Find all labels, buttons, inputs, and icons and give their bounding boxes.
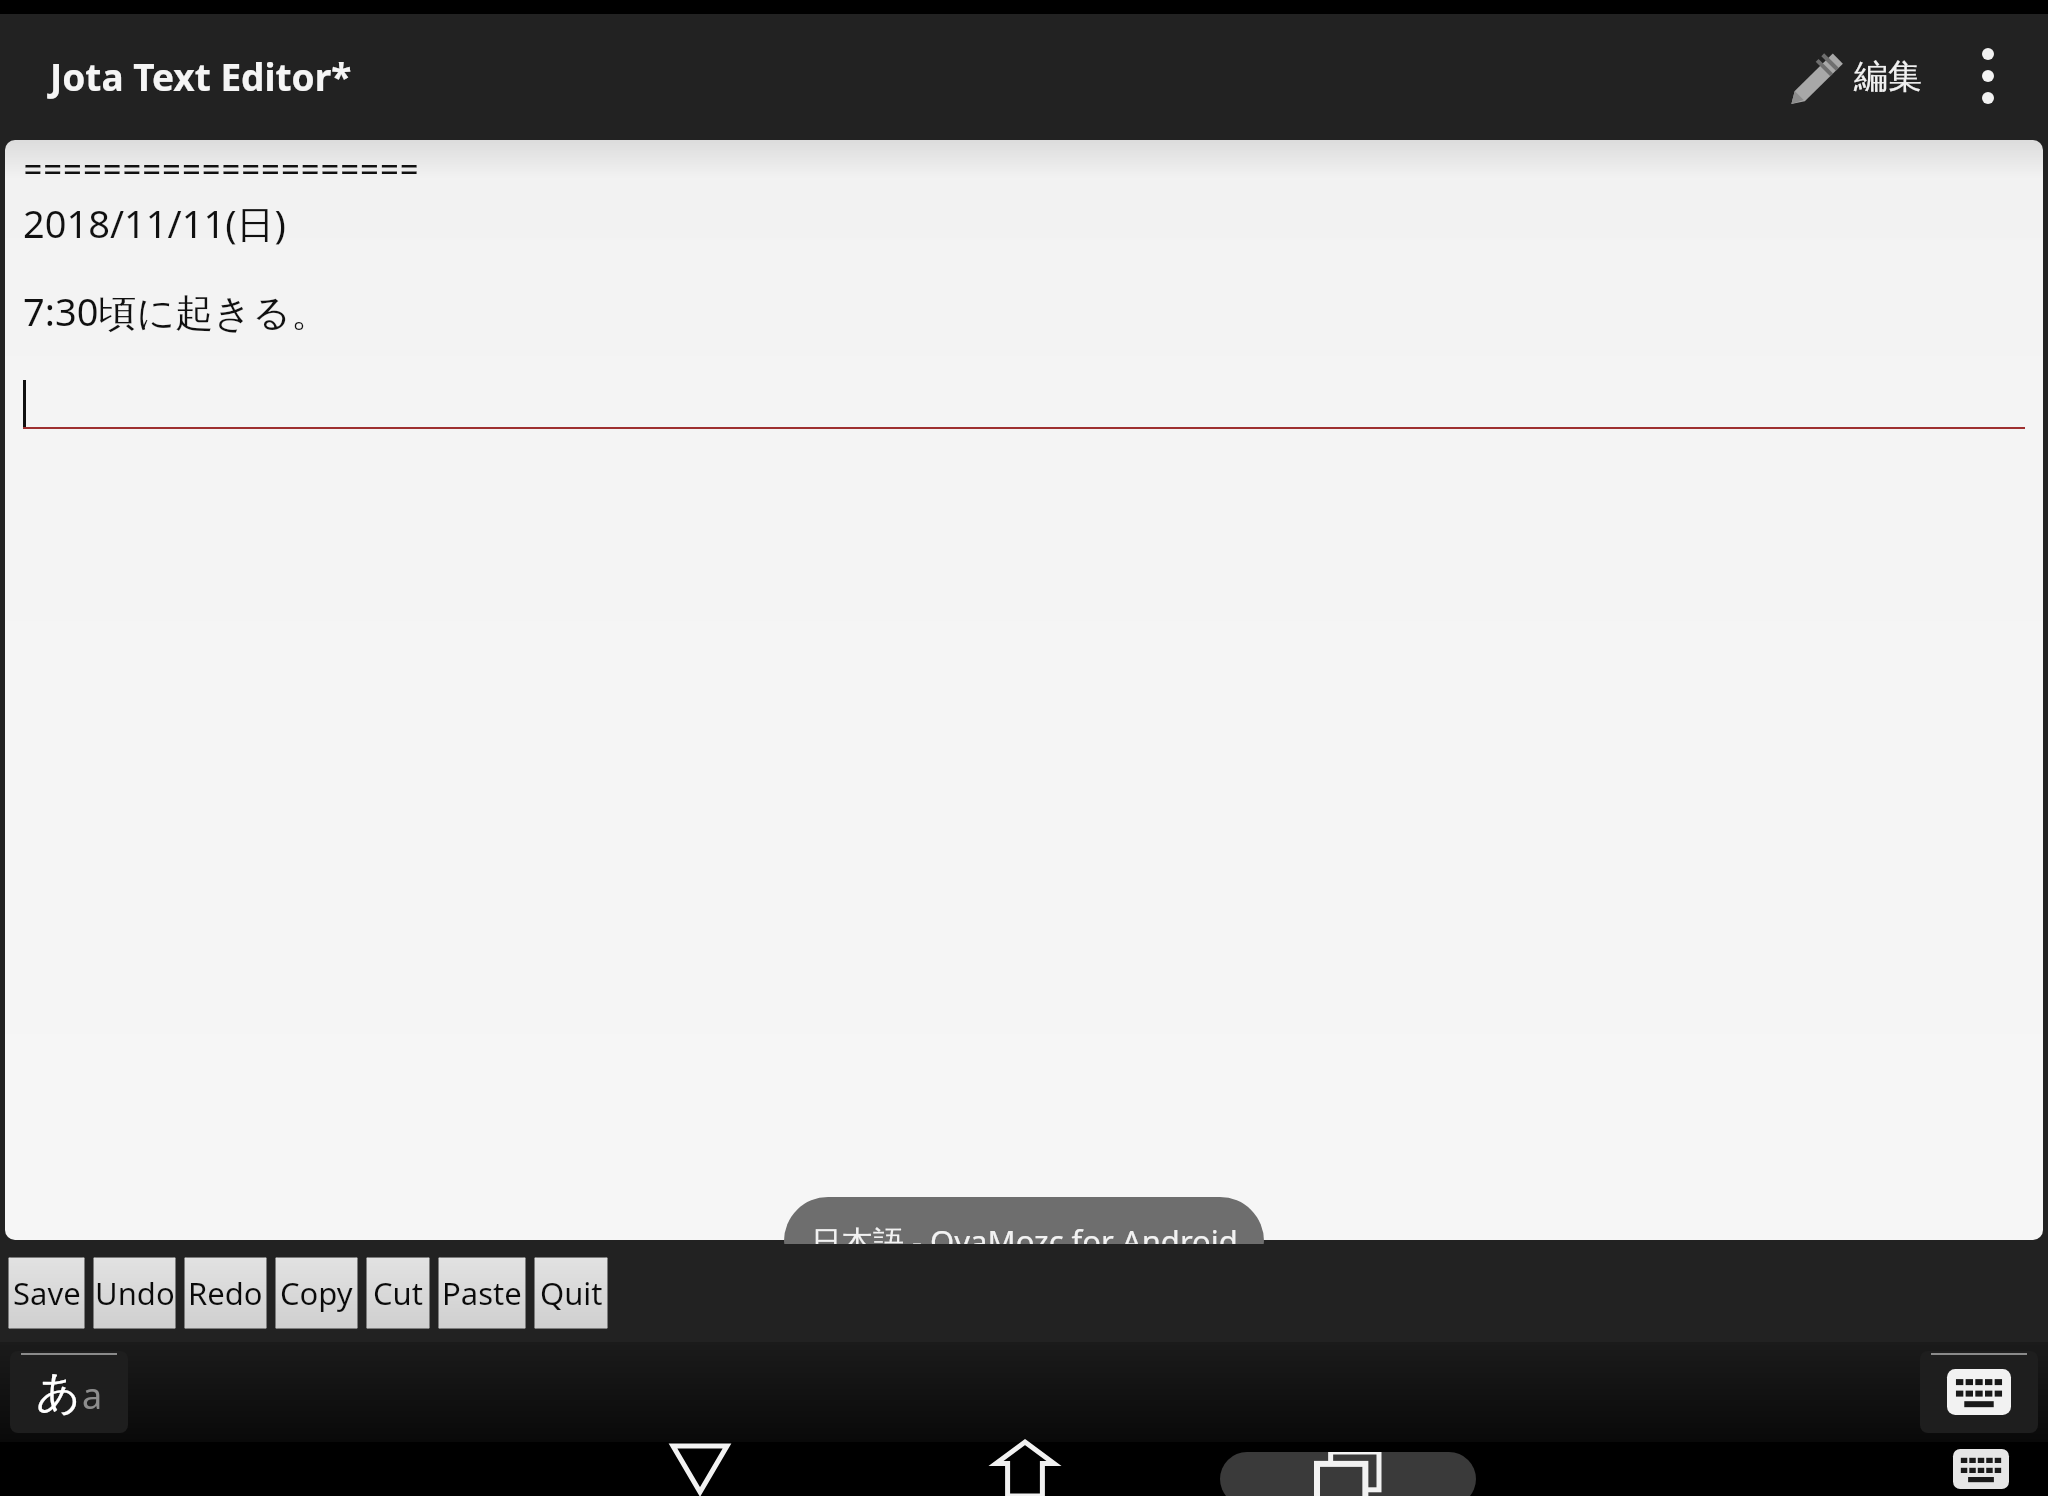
- button[interactable]: あ: [10, 1351, 128, 1433]
- staticText: Quit: [540, 1272, 603, 1314]
- button[interactable]: Recent apps: [1220, 1452, 1476, 1496]
- staticText: a: [82, 1371, 103, 1420]
- button[interactable]: Redo: [184, 1257, 267, 1329]
- button[interactable]: Save: [8, 1257, 85, 1329]
- staticText: ====================: [23, 146, 419, 191]
- staticText: Copy: [280, 1272, 353, 1314]
- button[interactable]: Show keyboard: [1926, 1442, 2036, 1496]
- button[interactable]: Undo: [93, 1257, 176, 1329]
- button[interactable]: Choose input method: [1920, 1351, 2038, 1433]
- button[interactable]: 編集: [1778, 30, 1932, 122]
- staticText: Paste: [442, 1272, 522, 1314]
- button[interactable]: Copy: [275, 1257, 358, 1329]
- staticText: 2018/11/11(日): [23, 197, 286, 249]
- staticText: あ: [36, 1365, 82, 1420]
- staticText: Jota Text Editor*: [50, 51, 352, 101]
- staticText: 編集: [1854, 55, 1922, 98]
- button[interactable]: Back: [640, 1442, 760, 1496]
- staticText: Undo: [95, 1272, 175, 1314]
- staticText: 日本語 - OyaMozc for Android: [811, 1220, 1238, 1262]
- button[interactable]: Home: [965, 1442, 1085, 1496]
- button[interactable]: Cut: [366, 1257, 430, 1329]
- button[interactable]: More options: [1950, 21, 2026, 131]
- staticText: 7:30頃に起きる。: [23, 285, 330, 337]
- button[interactable]: Paste: [438, 1257, 526, 1329]
- button[interactable]: Quit: [534, 1257, 608, 1329]
- staticText: Save: [13, 1272, 81, 1314]
- staticText: Redo: [188, 1272, 263, 1314]
- button[interactable]: ====================: [5, 140, 2043, 1240]
- staticText: Cut: [373, 1272, 423, 1314]
